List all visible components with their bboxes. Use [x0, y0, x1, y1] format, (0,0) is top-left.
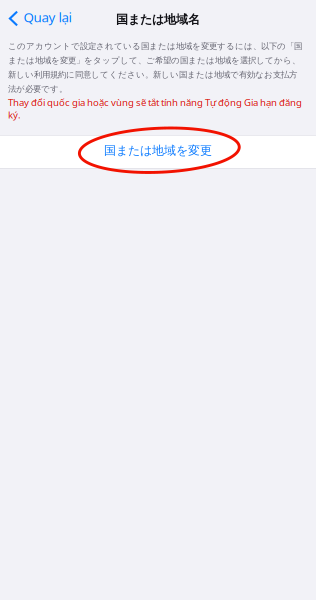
staticText: このアカウントで設定されている国または地域を変更するには、以下の「国 または地域… — [8, 41, 302, 94]
staticText: 国または地域名 — [116, 12, 200, 27]
button[interactable]: Quay lại — [0, 3, 81, 34]
staticText: Thay đổi quốc gia hoặc vùng sẽ tắt tính … — [8, 96, 302, 121]
staticText: 国または地域を変更 — [104, 143, 212, 158]
staticText: Quay lại — [23, 8, 71, 26]
button[interactable]: 国または地域を変更 — [0, 135, 316, 169]
